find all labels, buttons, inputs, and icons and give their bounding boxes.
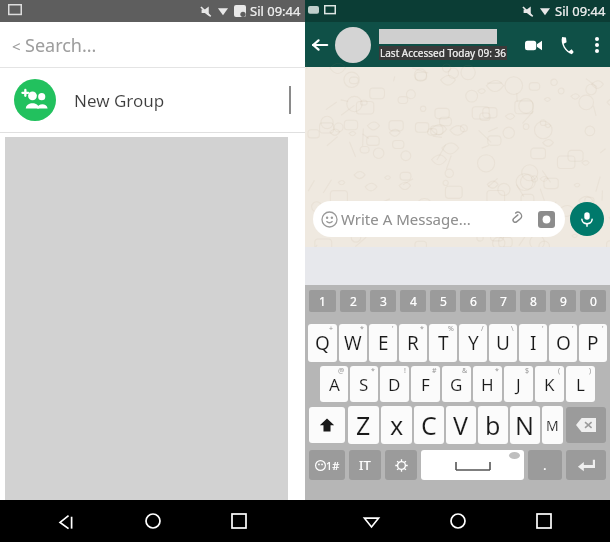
- button[interactable]: M: [542, 406, 563, 444]
- button[interactable]: 7: [490, 290, 516, 312]
- staticText: E: [378, 330, 389, 356]
- staticText: W: [344, 330, 362, 356]
- staticText: #: [432, 366, 437, 376]
- staticText: ': [572, 324, 574, 334]
- staticText: V: [453, 408, 469, 442]
- button[interactable]: Q: [308, 324, 337, 362]
- button[interactable]: Symbols: [309, 450, 345, 480]
- staticText: 6: [470, 293, 477, 309]
- staticText: Sil 09:44: [555, 2, 606, 20]
- button[interactable]: E: [369, 324, 397, 362]
- button[interactable]: I: [519, 324, 547, 362]
- button[interactable]: Voice call: [550, 28, 584, 62]
- button[interactable]: R: [399, 324, 427, 362]
- staticText: Last Accessed Today 09: 36: [380, 46, 506, 60]
- button[interactable]: Record voice message: [570, 202, 604, 236]
- button[interactable]: Home: [133, 501, 173, 541]
- button[interactable]: 2: [340, 290, 366, 312]
- button[interactable]: O: [549, 324, 577, 362]
- staticText: IT: [359, 456, 371, 474]
- button[interactable]: Settings: [385, 450, 417, 480]
- staticText: *: [371, 366, 375, 376]
- button[interactable]: Back: [305, 30, 335, 60]
- button[interactable]: Enter: [566, 450, 606, 480]
- button[interactable]: Video call: [516, 28, 550, 62]
- staticText: .: [543, 456, 547, 474]
- button[interactable]: 8: [520, 290, 546, 312]
- staticText: %: [448, 324, 454, 334]
- button[interactable]: Write A Message...: [313, 201, 565, 237]
- staticText: 4: [410, 293, 417, 309]
- button[interactable]: 0: [580, 290, 606, 312]
- button[interactable]: J: [504, 366, 533, 402]
- button[interactable]: Y: [459, 324, 487, 362]
- staticText: 2: [350, 293, 357, 309]
- button[interactable]: Backspace: [566, 407, 606, 443]
- button[interactable]: Camera: [535, 208, 557, 230]
- staticText: O: [556, 330, 571, 356]
- button[interactable]: Back: [351, 501, 391, 541]
- button[interactable]: L: [566, 366, 595, 402]
- staticText: &: [462, 366, 468, 376]
- staticText: S: [359, 373, 369, 396]
- button[interactable]: 1: [309, 290, 336, 312]
- button[interactable]: Space: [421, 450, 524, 480]
- staticText: 7: [500, 293, 507, 309]
- button[interactable]: 6: [460, 290, 486, 312]
- button[interactable]: W: [339, 324, 367, 362]
- button[interactable]: G: [442, 366, 471, 402]
- staticText: Sil 09:44: [250, 2, 301, 20]
- staticText: A: [329, 373, 340, 396]
- button[interactable]: N: [510, 406, 540, 444]
- staticText: *: [360, 324, 364, 334]
- staticText: T: [438, 330, 449, 356]
- button[interactable]: Language IT: [349, 450, 381, 480]
- button[interactable]: New Group: [0, 68, 305, 132]
- button[interactable]: K: [535, 366, 564, 402]
- button[interactable]: H: [473, 366, 502, 402]
- button[interactable]: 3: [370, 290, 396, 312]
- staticText: ): [589, 366, 592, 376]
- button[interactable]: P: [579, 324, 607, 362]
- button[interactable]: F: [411, 366, 440, 402]
- staticText: L: [576, 373, 585, 396]
- staticText: Search...: [25, 33, 97, 58]
- button[interactable]: A: [320, 366, 348, 402]
- staticText: K: [544, 373, 555, 396]
- staticText: G: [450, 373, 463, 396]
- button[interactable]: V: [446, 406, 476, 444]
- button[interactable]: D: [380, 366, 409, 402]
- button[interactable]: Attach: [507, 208, 529, 230]
- staticText: +: [329, 324, 334, 334]
- button[interactable]: Contact photo: [335, 27, 371, 63]
- button[interactable]: Z: [348, 406, 379, 444]
- staticText: 3: [380, 293, 387, 309]
- button[interactable]: 9: [550, 290, 576, 312]
- button[interactable]: Back: [46, 501, 86, 541]
- staticText: *: [495, 366, 499, 376]
- staticText: 8: [530, 293, 537, 309]
- staticText: 9: [560, 293, 567, 309]
- button[interactable]: T: [429, 324, 457, 362]
- staticText: N: [515, 408, 535, 442]
- button[interactable]: x: [381, 406, 412, 444]
- button[interactable]: 5: [430, 290, 456, 312]
- staticText: 1: [319, 293, 326, 309]
- button[interactable]: Shift: [309, 407, 345, 443]
- button[interactable]: S: [350, 366, 378, 402]
- button[interactable]: U: [489, 324, 517, 362]
- button[interactable]: Last Accessed Today 09: 36: [379, 29, 516, 60]
- button[interactable]: 4: [400, 290, 426, 312]
- button[interactable]: Home: [438, 501, 478, 541]
- staticText: (: [558, 366, 561, 376]
- button[interactable]: b: [478, 406, 508, 444]
- button[interactable]: More options: [584, 28, 610, 62]
- button[interactable]: Recents: [219, 501, 259, 541]
- staticText: ': [542, 324, 544, 334]
- button[interactable]: Period: [528, 450, 562, 480]
- button[interactable]: Recents: [524, 501, 564, 541]
- button[interactable]: C: [414, 406, 444, 444]
- button[interactable]: <: [0, 22, 305, 68]
- staticText: U: [496, 330, 510, 356]
- staticText: @: [338, 366, 345, 376]
